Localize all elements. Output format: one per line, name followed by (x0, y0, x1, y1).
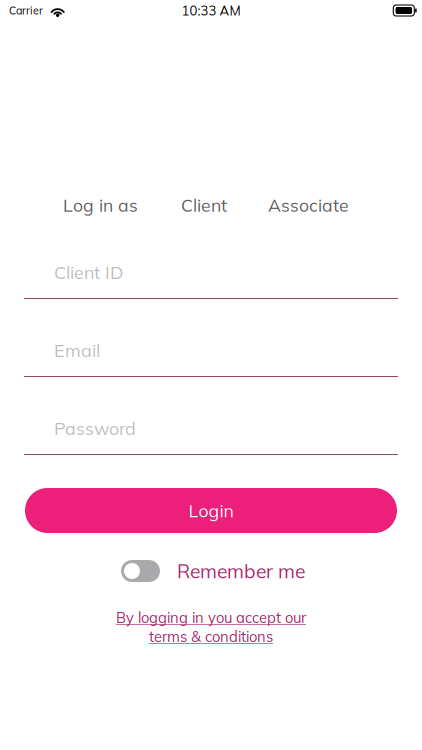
staticText: Client ID (54, 261, 123, 283)
staticText: Associate (268, 194, 349, 216)
staticText: Carrier (9, 4, 43, 17)
staticText: Login (188, 499, 233, 522)
button[interactable]: Remember me (121, 560, 160, 582)
button[interactable]: Login (25, 488, 397, 533)
staticText: Remember me (177, 559, 305, 583)
staticText: By logging in you accept our (116, 608, 306, 627)
staticText: Log in as (63, 194, 138, 216)
staticText: Client (181, 194, 227, 216)
button[interactable]: By logging in you accept our (116, 608, 306, 646)
staticText: terms & conditions (149, 627, 273, 646)
button[interactable]: Client (181, 194, 227, 216)
staticText: Email (54, 339, 100, 361)
staticText: Password (54, 417, 136, 439)
staticText: 10:33 AM (181, 2, 240, 19)
button[interactable]: Associate (268, 194, 349, 216)
